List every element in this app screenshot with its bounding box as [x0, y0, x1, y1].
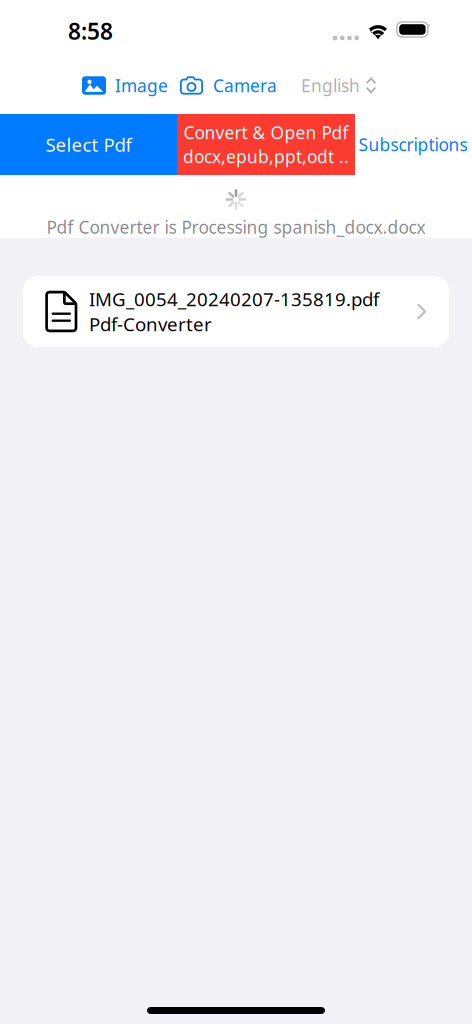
- staticText: Pdf-Converter: [89, 311, 212, 336]
- staticText: English: [301, 74, 360, 97]
- staticText: docx,epub,ppt,odt ..: [183, 145, 349, 168]
- button[interactable]: Convert & Open Pdf: [177, 114, 355, 175]
- staticText: Convert & Open Pdf: [183, 121, 348, 144]
- button[interactable]: Subscriptions: [355, 114, 471, 175]
- button[interactable]: English: [301, 68, 376, 103]
- staticText: IMG_0054_20240207-135819.pdf: [89, 287, 379, 311]
- staticText: Image: [115, 74, 168, 97]
- button[interactable]: Image: [82, 68, 168, 103]
- button[interactable]: Camera: [180, 68, 277, 103]
- staticText: Select Pdf: [45, 132, 131, 157]
- staticText: Subscriptions: [358, 133, 467, 156]
- staticText: Pdf Converter is Processing spanish_docx…: [46, 215, 425, 238]
- staticText: Camera: [213, 74, 277, 97]
- staticText: 8:58: [68, 16, 113, 46]
- button[interactable]: IMG_0054_20240207-135819.pdf: [23, 276, 449, 347]
- button[interactable]: Select Pdf: [0, 114, 177, 175]
